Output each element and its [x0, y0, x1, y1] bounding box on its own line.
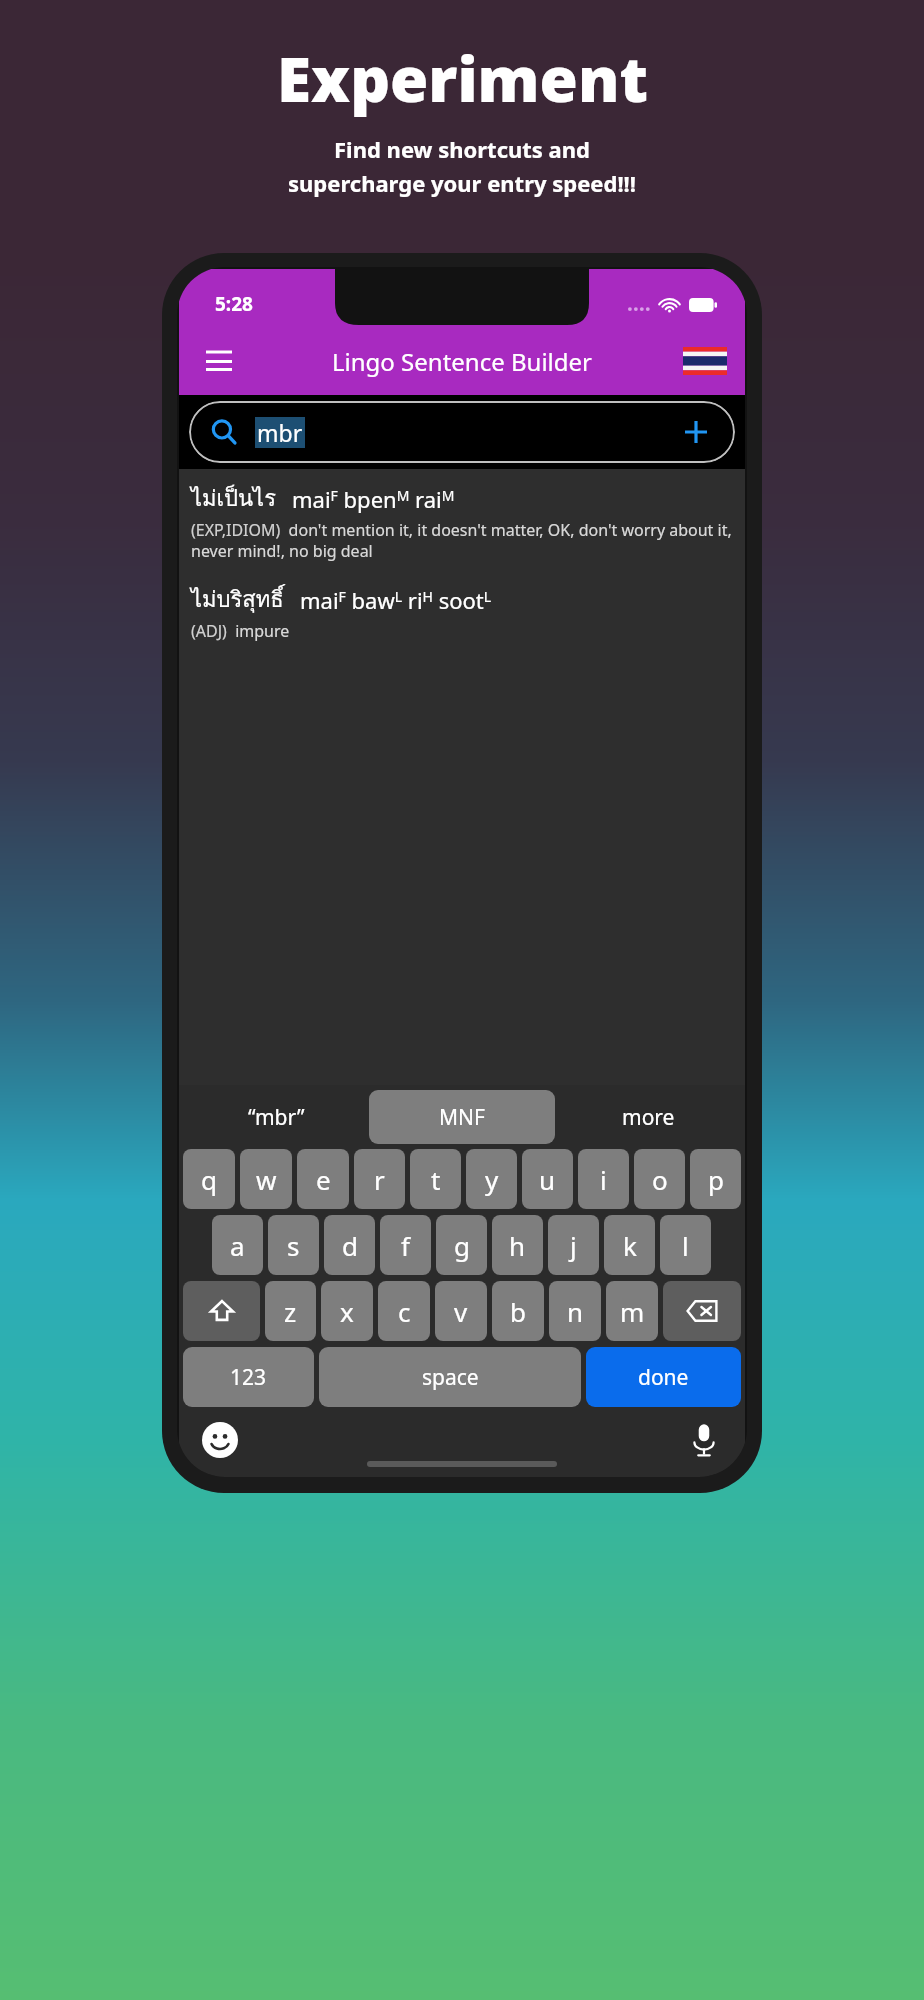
staticText: g [454, 1228, 470, 1263]
button[interactable]: d [324, 1215, 375, 1275]
staticText: m [620, 1294, 645, 1329]
staticText: MNF [439, 1103, 485, 1132]
button[interactable]: ไม่บริสุทธิ์ [191, 580, 733, 644]
button[interactable]: g [436, 1215, 487, 1275]
staticText: ไม่บริสุทธิ์ [191, 582, 284, 617]
staticText: ไม่เป็นไร [191, 481, 276, 516]
staticText: j [570, 1228, 577, 1263]
staticText: n [567, 1294, 584, 1329]
button[interactable]: o [634, 1149, 685, 1209]
staticText: Experiment [277, 36, 648, 120]
button[interactable]: e [297, 1149, 349, 1209]
staticText: e [316, 1162, 331, 1197]
button[interactable]: h [492, 1215, 543, 1275]
button[interactable]: Add [679, 415, 713, 449]
staticText: d [342, 1228, 358, 1263]
staticText: y [485, 1162, 499, 1197]
button[interactable]: z [265, 1281, 316, 1341]
staticText: more [622, 1103, 675, 1132]
button[interactable]: MNF [369, 1090, 555, 1144]
button[interactable]: x [321, 1281, 373, 1341]
staticText: (EXP,IDIOM) don't mention it, it doesn't… [191, 519, 733, 562]
button[interactable]: more [555, 1085, 741, 1149]
button[interactable]: Language flag [681, 337, 729, 385]
button[interactable]: b [492, 1281, 544, 1341]
button[interactable]: k [604, 1215, 655, 1275]
button[interactable]: c [378, 1281, 430, 1341]
staticText: a [230, 1228, 245, 1263]
staticText: k [623, 1228, 637, 1263]
button[interactable]: r [354, 1149, 405, 1209]
button[interactable]: space [319, 1347, 581, 1407]
staticText: (ADJ) impure [191, 620, 290, 642]
staticText: i [600, 1162, 607, 1197]
button[interactable]: done [586, 1347, 741, 1407]
button[interactable]: a [212, 1215, 263, 1275]
button[interactable]: “mbr” [183, 1085, 369, 1149]
button[interactable]: i [578, 1149, 629, 1209]
button[interactable]: Voice input [681, 1417, 727, 1463]
staticText: u [539, 1162, 556, 1197]
staticText: q [201, 1162, 217, 1197]
staticText: p [708, 1162, 724, 1197]
button[interactable]: v [435, 1281, 487, 1341]
button[interactable]: p [690, 1149, 741, 1209]
button[interactable]: t [410, 1149, 461, 1209]
button[interactable]: l [660, 1215, 711, 1275]
staticText: h [509, 1228, 526, 1263]
staticText: b [510, 1294, 526, 1329]
staticText: s [287, 1228, 300, 1263]
staticText: r [374, 1162, 385, 1197]
button[interactable]: q [183, 1149, 235, 1209]
staticText: z [284, 1294, 297, 1329]
button[interactable]: Menu [193, 335, 245, 387]
staticText: l [682, 1228, 689, 1263]
button[interactable]: w [240, 1149, 292, 1209]
staticText: x [340, 1294, 354, 1329]
button[interactable]: mbr [189, 401, 735, 463]
staticText: maiF bawL riH sootL [300, 585, 492, 615]
staticText: Find new shortcuts and [334, 134, 590, 164]
staticText: 123 [230, 1363, 267, 1392]
button[interactable]: Emoji [197, 1417, 243, 1463]
staticText: maiF bpenM raiM [292, 484, 455, 514]
staticText: f [401, 1228, 410, 1263]
button[interactable]: n [549, 1281, 601, 1341]
button[interactable]: 123 [183, 1347, 314, 1407]
staticText: t [431, 1162, 441, 1197]
staticText: v [454, 1294, 468, 1329]
staticText: Lingo Sentence Builder [332, 345, 593, 378]
button[interactable]: ไม่เป็นไร [191, 479, 733, 564]
staticText: space [422, 1363, 479, 1392]
button[interactable]: y [466, 1149, 517, 1209]
staticText: c [398, 1294, 411, 1329]
button[interactable]: j [548, 1215, 599, 1275]
button[interactable]: u [522, 1149, 573, 1209]
button[interactable]: f [380, 1215, 431, 1275]
button[interactable]: Shift [183, 1281, 260, 1341]
staticText: done [638, 1363, 689, 1392]
button[interactable]: m [606, 1281, 658, 1341]
button[interactable]: Backspace [663, 1281, 741, 1341]
button[interactable]: s [268, 1215, 319, 1275]
staticText: mbr [257, 417, 303, 448]
staticText: o [652, 1162, 668, 1197]
staticText: 5:28 [215, 291, 253, 317]
staticText: supercharge your entry speed!!! [288, 168, 636, 198]
staticText: “mbr” [248, 1103, 305, 1132]
staticText: w [256, 1162, 277, 1197]
